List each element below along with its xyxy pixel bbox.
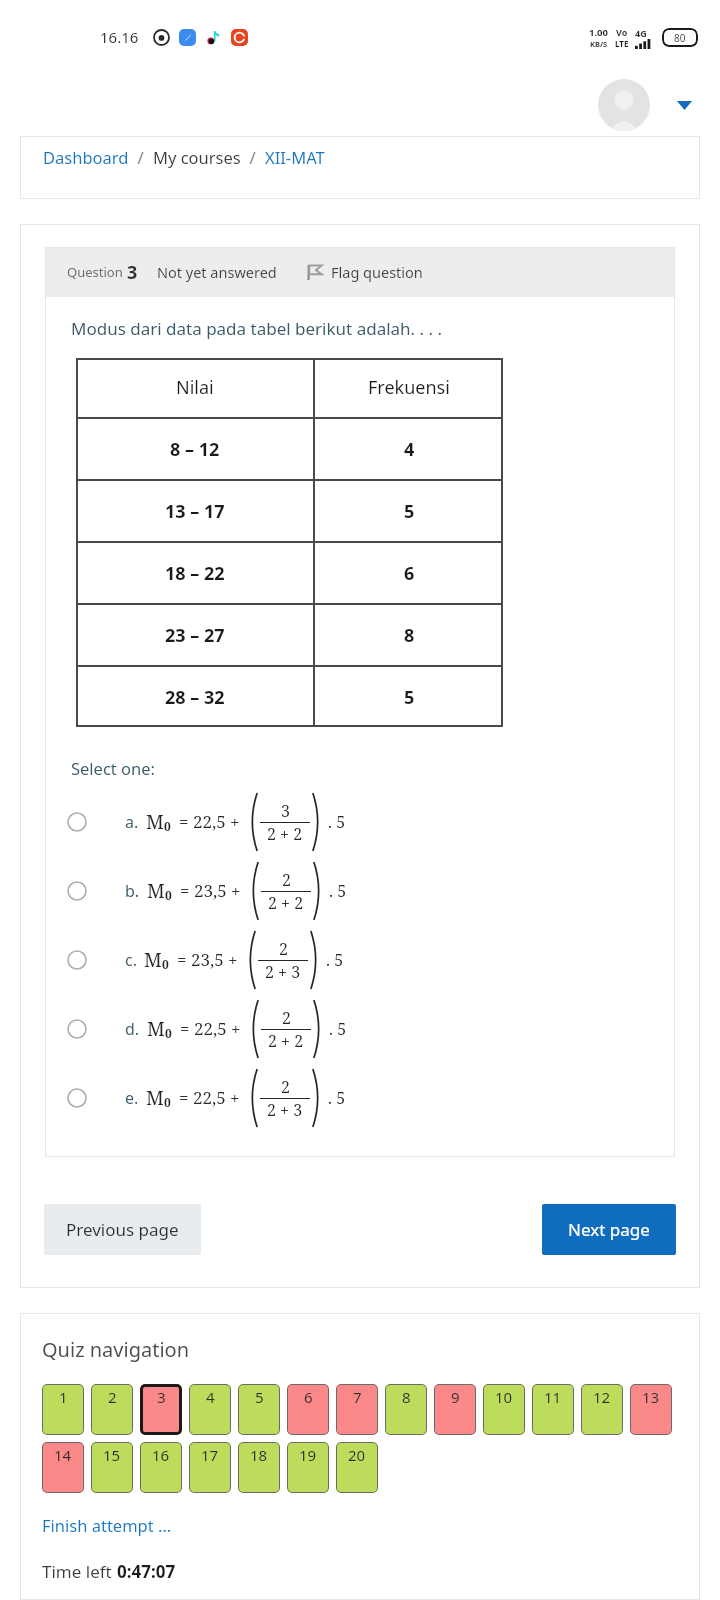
staticText: Select one: xyxy=(71,757,156,779)
button[interactable]: 20 xyxy=(336,1442,378,1493)
button[interactable]: e. xyxy=(45,1063,675,1132)
button[interactable]: 10 xyxy=(483,1384,525,1435)
staticText: 0 xyxy=(164,818,171,834)
staticText: 12 xyxy=(593,1387,611,1407)
staticText: 0 xyxy=(162,956,169,972)
staticText: 8 xyxy=(402,1387,411,1407)
button[interactable]: Flag question xyxy=(306,262,423,282)
button[interactable]: a. xyxy=(45,787,675,856)
button[interactable]: 2 xyxy=(91,1384,133,1435)
staticText: 17 xyxy=(201,1445,219,1465)
staticText: LTE xyxy=(615,38,629,49)
staticText: KB/S xyxy=(590,39,608,49)
button[interactable]: Dashboard xyxy=(43,146,129,168)
staticText: M xyxy=(146,809,164,835)
button[interactable]: 17 xyxy=(189,1442,231,1493)
button[interactable]: 12 xyxy=(581,1384,623,1435)
staticText: M xyxy=(146,1085,164,1111)
button[interactable]: My courses xyxy=(153,146,241,168)
staticText: 4 xyxy=(404,437,415,462)
staticText: Previous page xyxy=(66,1218,179,1241)
staticText: . 5 xyxy=(328,811,346,833)
button[interactable]: Expand menu xyxy=(672,93,696,117)
staticText: 6 xyxy=(404,561,415,586)
staticText: = 23,5 + xyxy=(177,948,238,971)
button[interactable]: 7 xyxy=(336,1384,378,1435)
staticText: 2 xyxy=(282,1007,291,1029)
staticText: 2 + 2 xyxy=(267,823,303,845)
staticText: 0 xyxy=(164,1094,171,1110)
staticText: . 5 xyxy=(328,1087,346,1109)
button[interactable]: c. xyxy=(45,925,675,994)
button[interactable]: 8 xyxy=(385,1384,427,1435)
staticText: 0 xyxy=(165,887,172,903)
staticText: 5 xyxy=(404,685,415,710)
staticText: 15 xyxy=(103,1445,121,1465)
staticText: a. xyxy=(125,811,139,833)
button[interactable]: XII-MAT xyxy=(265,146,325,168)
button[interactable]: 14 xyxy=(42,1442,84,1493)
button[interactable]: 5 xyxy=(238,1384,280,1435)
staticText: 10 xyxy=(495,1387,513,1407)
staticText: 5 xyxy=(255,1387,264,1407)
button[interactable]: Finish attempt ... xyxy=(42,1514,172,1536)
staticText: 80 xyxy=(674,31,686,45)
staticText: = 23,5 + xyxy=(180,879,241,902)
staticText: 2 xyxy=(281,1076,290,1098)
staticText: Quiz navigation xyxy=(42,1336,189,1363)
staticText: 2 + 2 xyxy=(268,1030,304,1052)
staticText: 3 xyxy=(127,260,138,285)
staticText: / xyxy=(241,146,265,168)
button[interactable]: 15 xyxy=(91,1442,133,1493)
button[interactable]: Next page xyxy=(542,1204,676,1255)
staticText: 1.00 xyxy=(589,26,608,39)
staticText: 0 xyxy=(165,1025,172,1041)
staticText: 16.16 xyxy=(100,27,139,47)
staticText: b. xyxy=(125,880,140,902)
staticText: 23 – 27 xyxy=(165,623,225,648)
staticText: Question xyxy=(67,263,127,281)
staticText: = 22,5 + xyxy=(180,1017,241,1040)
staticText: Not yet answered xyxy=(157,262,277,282)
button[interactable]: 3 xyxy=(140,1384,182,1435)
staticText: c. xyxy=(125,949,137,971)
button[interactable]: 4 xyxy=(189,1384,231,1435)
button[interactable]: b. xyxy=(45,856,675,925)
staticText: 8 – 12 xyxy=(170,437,220,462)
button[interactable]: 16 xyxy=(140,1442,182,1493)
staticText: 9 xyxy=(451,1387,460,1407)
staticText: Nilai xyxy=(176,375,214,400)
staticText: . 5 xyxy=(329,880,347,902)
button[interactable]: 1 xyxy=(42,1384,84,1435)
staticText: 18 – 22 xyxy=(165,561,225,586)
button[interactable]: 19 xyxy=(287,1442,329,1493)
staticText: 5 xyxy=(404,499,415,524)
staticText: 16 xyxy=(152,1445,170,1465)
button[interactable]: User menu xyxy=(598,79,650,131)
staticText: . 5 xyxy=(326,949,344,971)
staticText: = 22,5 + xyxy=(179,1086,240,1109)
staticText: 8 xyxy=(404,623,415,648)
staticText: 13 – 17 xyxy=(165,499,225,524)
staticText: 11 xyxy=(544,1387,562,1407)
button[interactable]: 13 xyxy=(630,1384,672,1435)
staticText: 19 xyxy=(299,1445,317,1465)
button[interactable]: 11 xyxy=(532,1384,574,1435)
staticText: Modus dari data pada tabel berikut adala… xyxy=(71,317,443,340)
staticText: Next page xyxy=(568,1218,650,1241)
staticText: 3 xyxy=(157,1387,166,1407)
button[interactable]: 6 xyxy=(287,1384,329,1435)
button[interactable]: d. xyxy=(45,994,675,1063)
staticText: 2 xyxy=(108,1387,117,1407)
staticText: d. xyxy=(125,1018,140,1040)
staticText: 3 xyxy=(281,800,290,822)
button[interactable]: 9 xyxy=(434,1384,476,1435)
staticText: e. xyxy=(125,1087,139,1109)
staticText: 2 + 3 xyxy=(267,1099,303,1121)
staticText: 18 xyxy=(250,1445,268,1465)
button[interactable]: Previous page xyxy=(44,1204,201,1255)
staticText: 4 xyxy=(206,1387,215,1407)
staticText: 2 + 2 xyxy=(268,892,304,914)
button[interactable]: 18 xyxy=(238,1442,280,1493)
staticText: 1 xyxy=(59,1387,68,1407)
